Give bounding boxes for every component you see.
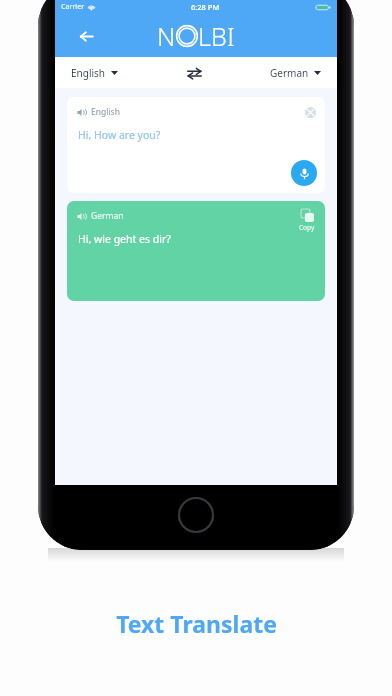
- staticText: LBI: [198, 19, 235, 53]
- button[interactable]: Swap languages: [182, 61, 206, 85]
- button[interactable]: English: [67, 97, 325, 193]
- button[interactable]: English: [69, 62, 120, 84]
- button[interactable]: German: [67, 201, 325, 301]
- button[interactable]: Copy: [297, 207, 317, 234]
- staticText: Copy: [299, 223, 315, 232]
- staticText: Hi, How are you?: [78, 128, 161, 142]
- button[interactable]: German: [268, 62, 323, 84]
- staticText: English: [71, 66, 106, 80]
- staticText: N: [157, 19, 176, 53]
- button[interactable]: Clear text: [302, 104, 318, 120]
- staticText: Hi, wie geht es dir?: [78, 232, 171, 246]
- staticText: German: [270, 66, 309, 80]
- button[interactable]: Back: [73, 23, 99, 49]
- staticText: 6:28 PM: [191, 2, 220, 12]
- staticText: English: [91, 106, 120, 118]
- staticText: German: [91, 210, 124, 222]
- button[interactable]: Voice input: [291, 160, 317, 186]
- staticText: Text Translate: [116, 608, 277, 639]
- staticText: Carrier: [61, 2, 85, 12]
